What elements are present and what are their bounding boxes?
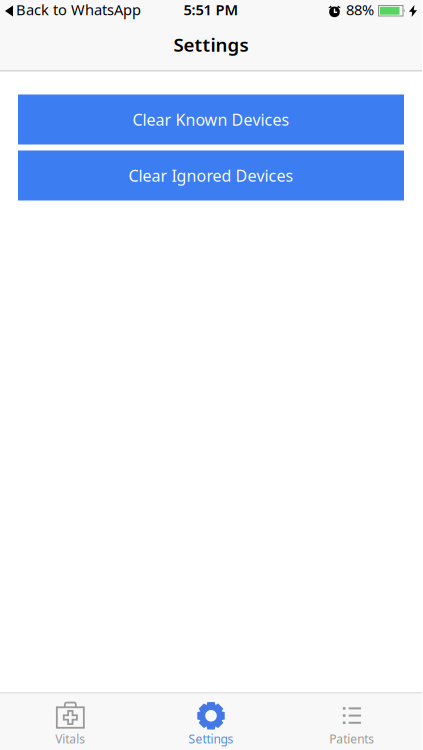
staticText: Patients — [329, 731, 374, 747]
button[interactable]: Clear Ignored Devices — [18, 150, 404, 200]
button[interactable]: Settings — [141, 697, 281, 747]
staticText: Settings — [173, 32, 248, 57]
staticText: Vitals — [55, 731, 85, 747]
staticText: Clear Known Devices — [132, 109, 289, 130]
staticText: 88% — [346, 0, 374, 19]
staticText: Clear Ignored Devices — [128, 165, 293, 186]
staticText: Back to WhatsApp — [16, 0, 141, 19]
button[interactable]: Back to WhatsApp — [5, 0, 141, 22]
button[interactable]: Patients — [281, 697, 422, 747]
staticText: Settings — [188, 731, 233, 747]
button[interactable]: Clear Known Devices — [18, 94, 404, 144]
button[interactable]: Vitals — [0, 697, 141, 747]
staticText: 5:51 PM — [183, 0, 238, 19]
